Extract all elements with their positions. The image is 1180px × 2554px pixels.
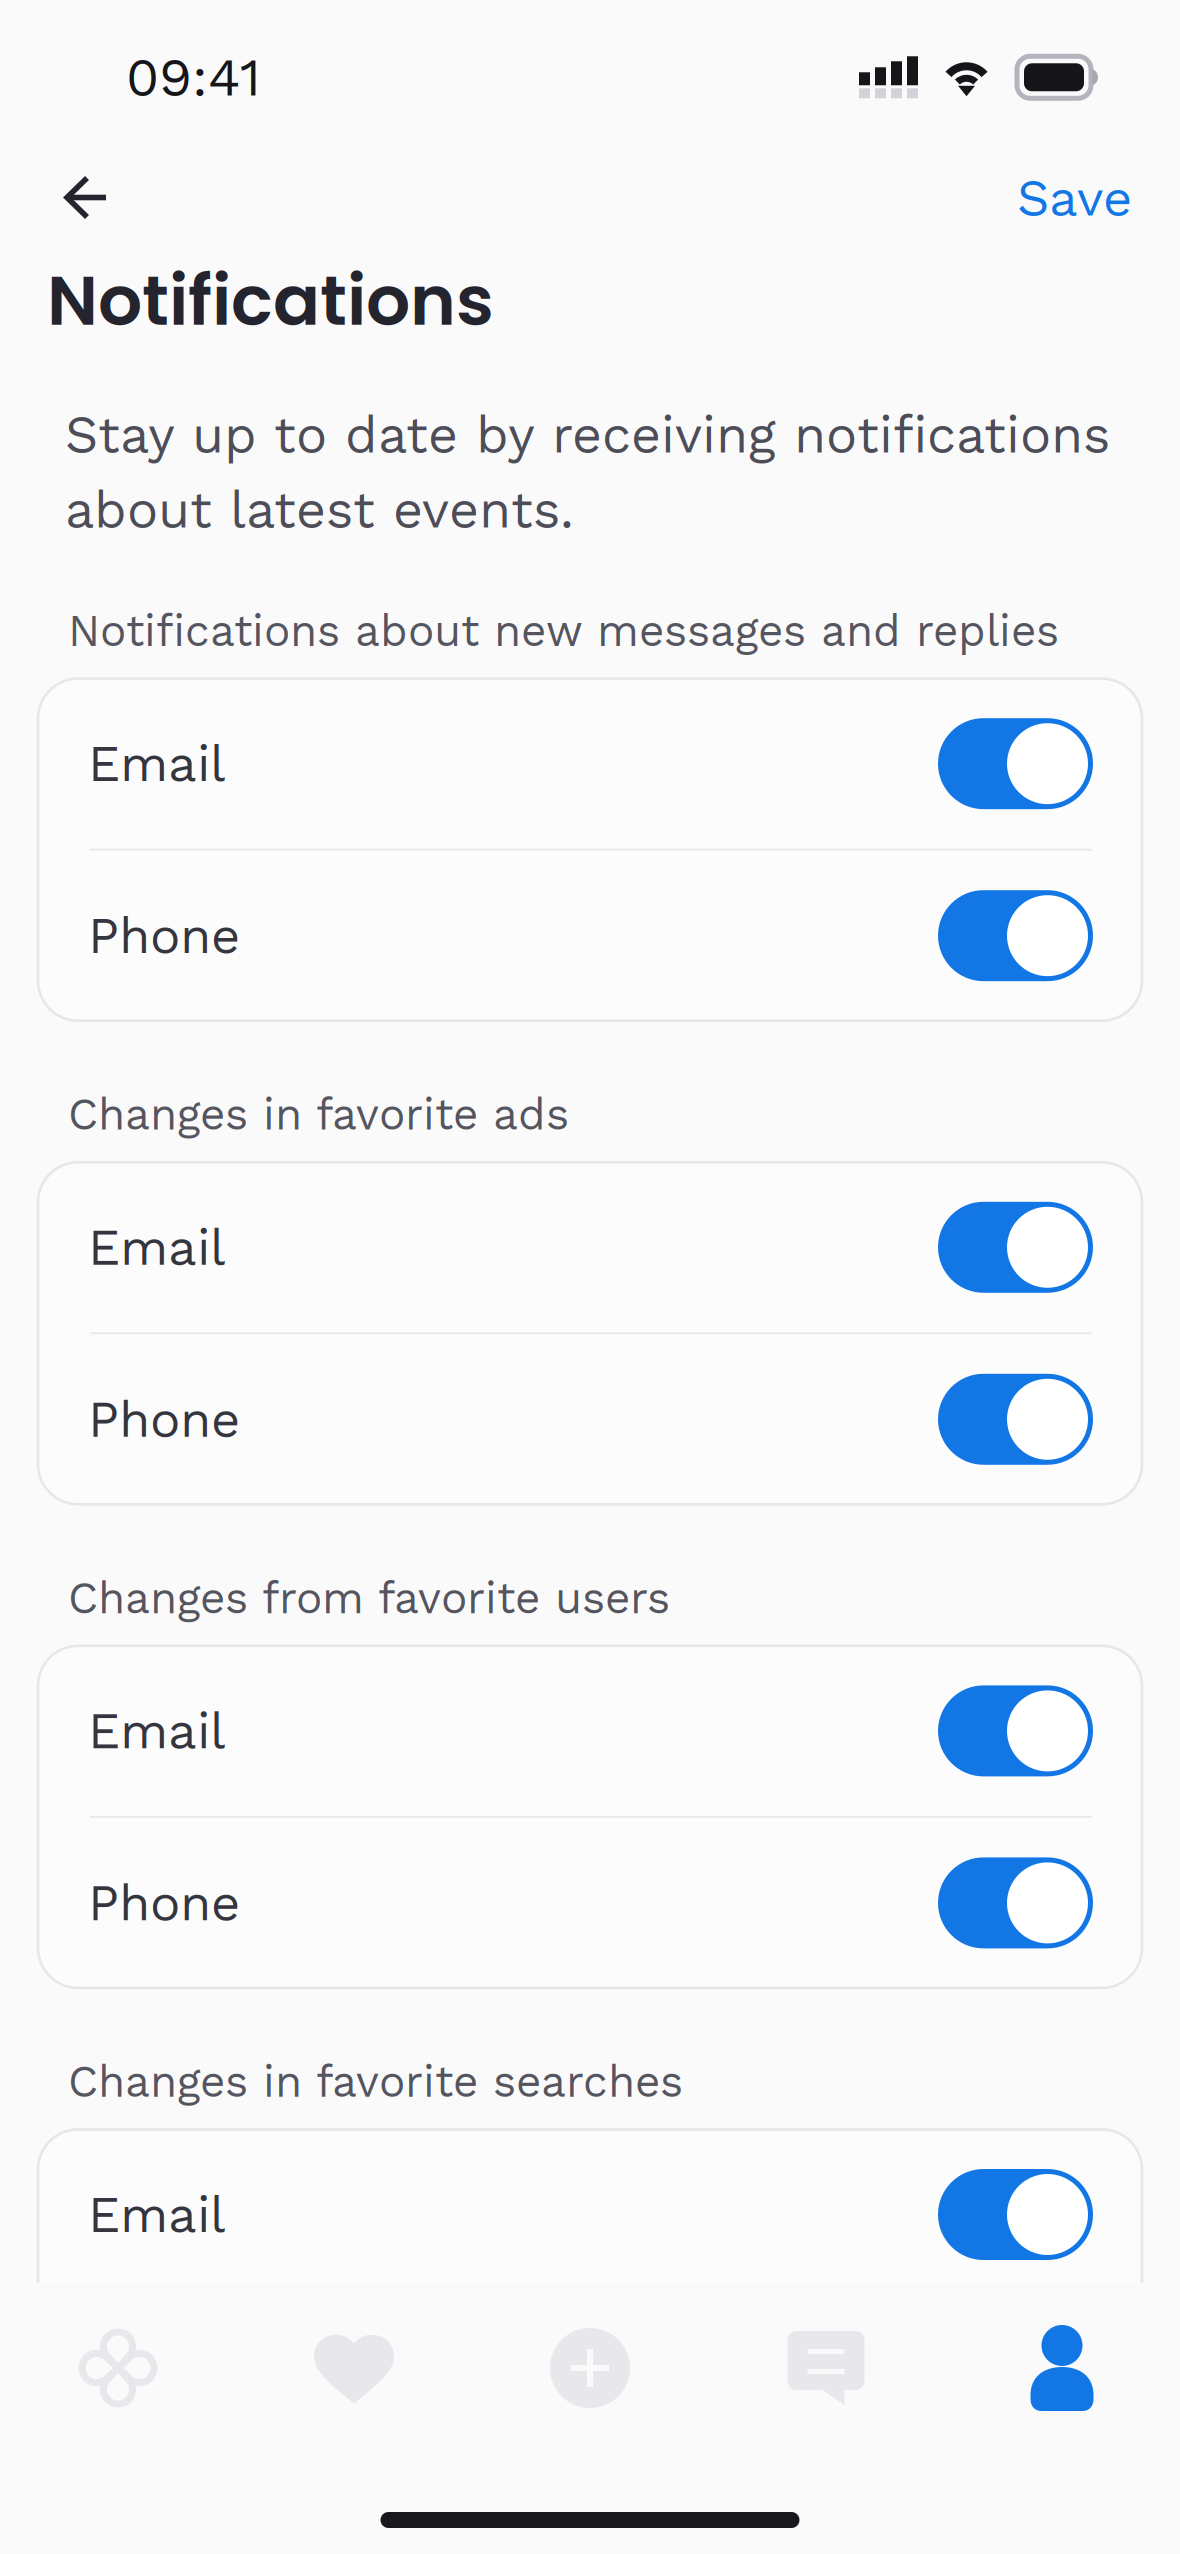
staticText: Phone (88, 2357, 240, 2416)
button[interactable]: Messages (708, 2283, 944, 2453)
button[interactable]: Profile (944, 2283, 1180, 2453)
staticText: Changes in favorite searches (68, 2056, 683, 2107)
button[interactable]: Email (38, 2129, 1142, 2299)
staticText: Save (1017, 168, 1132, 228)
staticText: Changes in favorite ads (68, 1089, 569, 1140)
staticText: Notifications about new messages and rep… (68, 605, 1059, 657)
staticText: Phone (88, 906, 240, 965)
staticText: Email (88, 1218, 226, 1277)
staticText: Notifications (47, 252, 494, 349)
button[interactable]: Save (991, 144, 1152, 252)
button[interactable]: Phone (38, 1818, 1142, 1988)
staticText: Email (88, 2185, 226, 2244)
staticText: Phone (88, 1390, 240, 1449)
button[interactable]: Create (472, 2283, 708, 2453)
button[interactable]: Phone (38, 2301, 1142, 2471)
button[interactable]: Favorites (236, 2283, 472, 2453)
button[interactable]: Back (46, 154, 133, 242)
button[interactable]: Email (38, 1162, 1142, 1332)
button[interactable]: Browse (0, 2283, 236, 2453)
staticText: Phone (88, 1873, 240, 1933)
staticText: Stay up to date by receiving notificatio… (65, 404, 1110, 465)
staticText: Email (88, 1701, 226, 1761)
staticText: Email (88, 734, 226, 793)
button[interactable]: Phone (38, 1334, 1142, 1504)
staticText: 09:41 (126, 46, 261, 109)
button[interactable]: Phone (38, 851, 1142, 1021)
button[interactable]: Email (38, 679, 1142, 849)
button[interactable]: Email (38, 1646, 1142, 1816)
staticText: about latest events. (65, 479, 574, 540)
staticText: Changes from favorite users (68, 1572, 670, 1624)
